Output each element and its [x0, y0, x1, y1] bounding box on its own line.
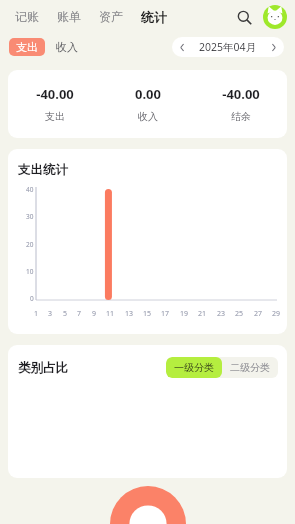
- button[interactable]: 记账: [6, 4, 48, 29]
- staticText: 3: [48, 309, 53, 319]
- staticText: 账单: [57, 9, 81, 24]
- staticText: 23: [217, 309, 226, 319]
- staticText: 收入: [56, 40, 78, 54]
- staticText: 15: [143, 309, 152, 319]
- staticText: 结余: [231, 110, 251, 123]
- staticText: 类别占比: [18, 360, 68, 376]
- staticText: 27: [254, 309, 263, 319]
- staticText: 5: [63, 309, 68, 319]
- staticText: 10: [26, 267, 34, 276]
- staticText: 17: [161, 309, 170, 319]
- button[interactable]: 二级分类: [222, 357, 278, 378]
- staticText: -40.00: [222, 85, 260, 103]
- staticText: 记账: [15, 9, 39, 24]
- button[interactable]: Profile: [261, 3, 289, 31]
- button[interactable]: 收入: [53, 38, 81, 56]
- staticText: 0.00: [135, 85, 161, 103]
- staticText: 29: [272, 309, 281, 319]
- staticText: 1: [34, 309, 39, 319]
- button[interactable]: 类别占比: [8, 345, 287, 478]
- button[interactable]: Add record: [110, 486, 186, 524]
- staticText: 9: [92, 309, 97, 319]
- staticText: 7: [77, 309, 82, 319]
- button[interactable]: 支出: [9, 38, 45, 56]
- staticText: 40: [26, 185, 34, 194]
- staticText: 收入: [138, 110, 158, 123]
- staticText: 0: [30, 294, 34, 303]
- staticText: -40.00: [36, 85, 74, 103]
- staticText: 25: [235, 309, 244, 319]
- button[interactable]: Search: [230, 3, 258, 31]
- button[interactable]: 统计: [132, 4, 176, 30]
- button[interactable]: 2025年04月: [172, 37, 284, 57]
- button[interactable]: 账单: [48, 4, 90, 29]
- staticText: 19: [180, 309, 189, 319]
- staticText: 2025年04月: [199, 40, 257, 54]
- staticText: 一级分类: [174, 361, 214, 374]
- staticText: 二级分类: [230, 361, 270, 374]
- staticText: 支出: [45, 110, 65, 123]
- staticText: 11: [106, 309, 115, 319]
- staticText: 13: [125, 309, 134, 319]
- staticText: 21: [198, 309, 207, 319]
- staticText: 30: [26, 212, 34, 221]
- button[interactable]: 支出统计: [8, 149, 287, 334]
- staticText: 20: [26, 240, 34, 249]
- staticText: 统计: [141, 9, 167, 25]
- button[interactable]: 一级分类: [166, 357, 222, 378]
- staticText: 支出: [16, 40, 38, 54]
- staticText: 资产: [99, 9, 123, 24]
- staticText: 支出统计: [18, 162, 68, 178]
- button[interactable]: -40.00: [8, 70, 287, 138]
- button[interactable]: 资产: [90, 4, 132, 29]
